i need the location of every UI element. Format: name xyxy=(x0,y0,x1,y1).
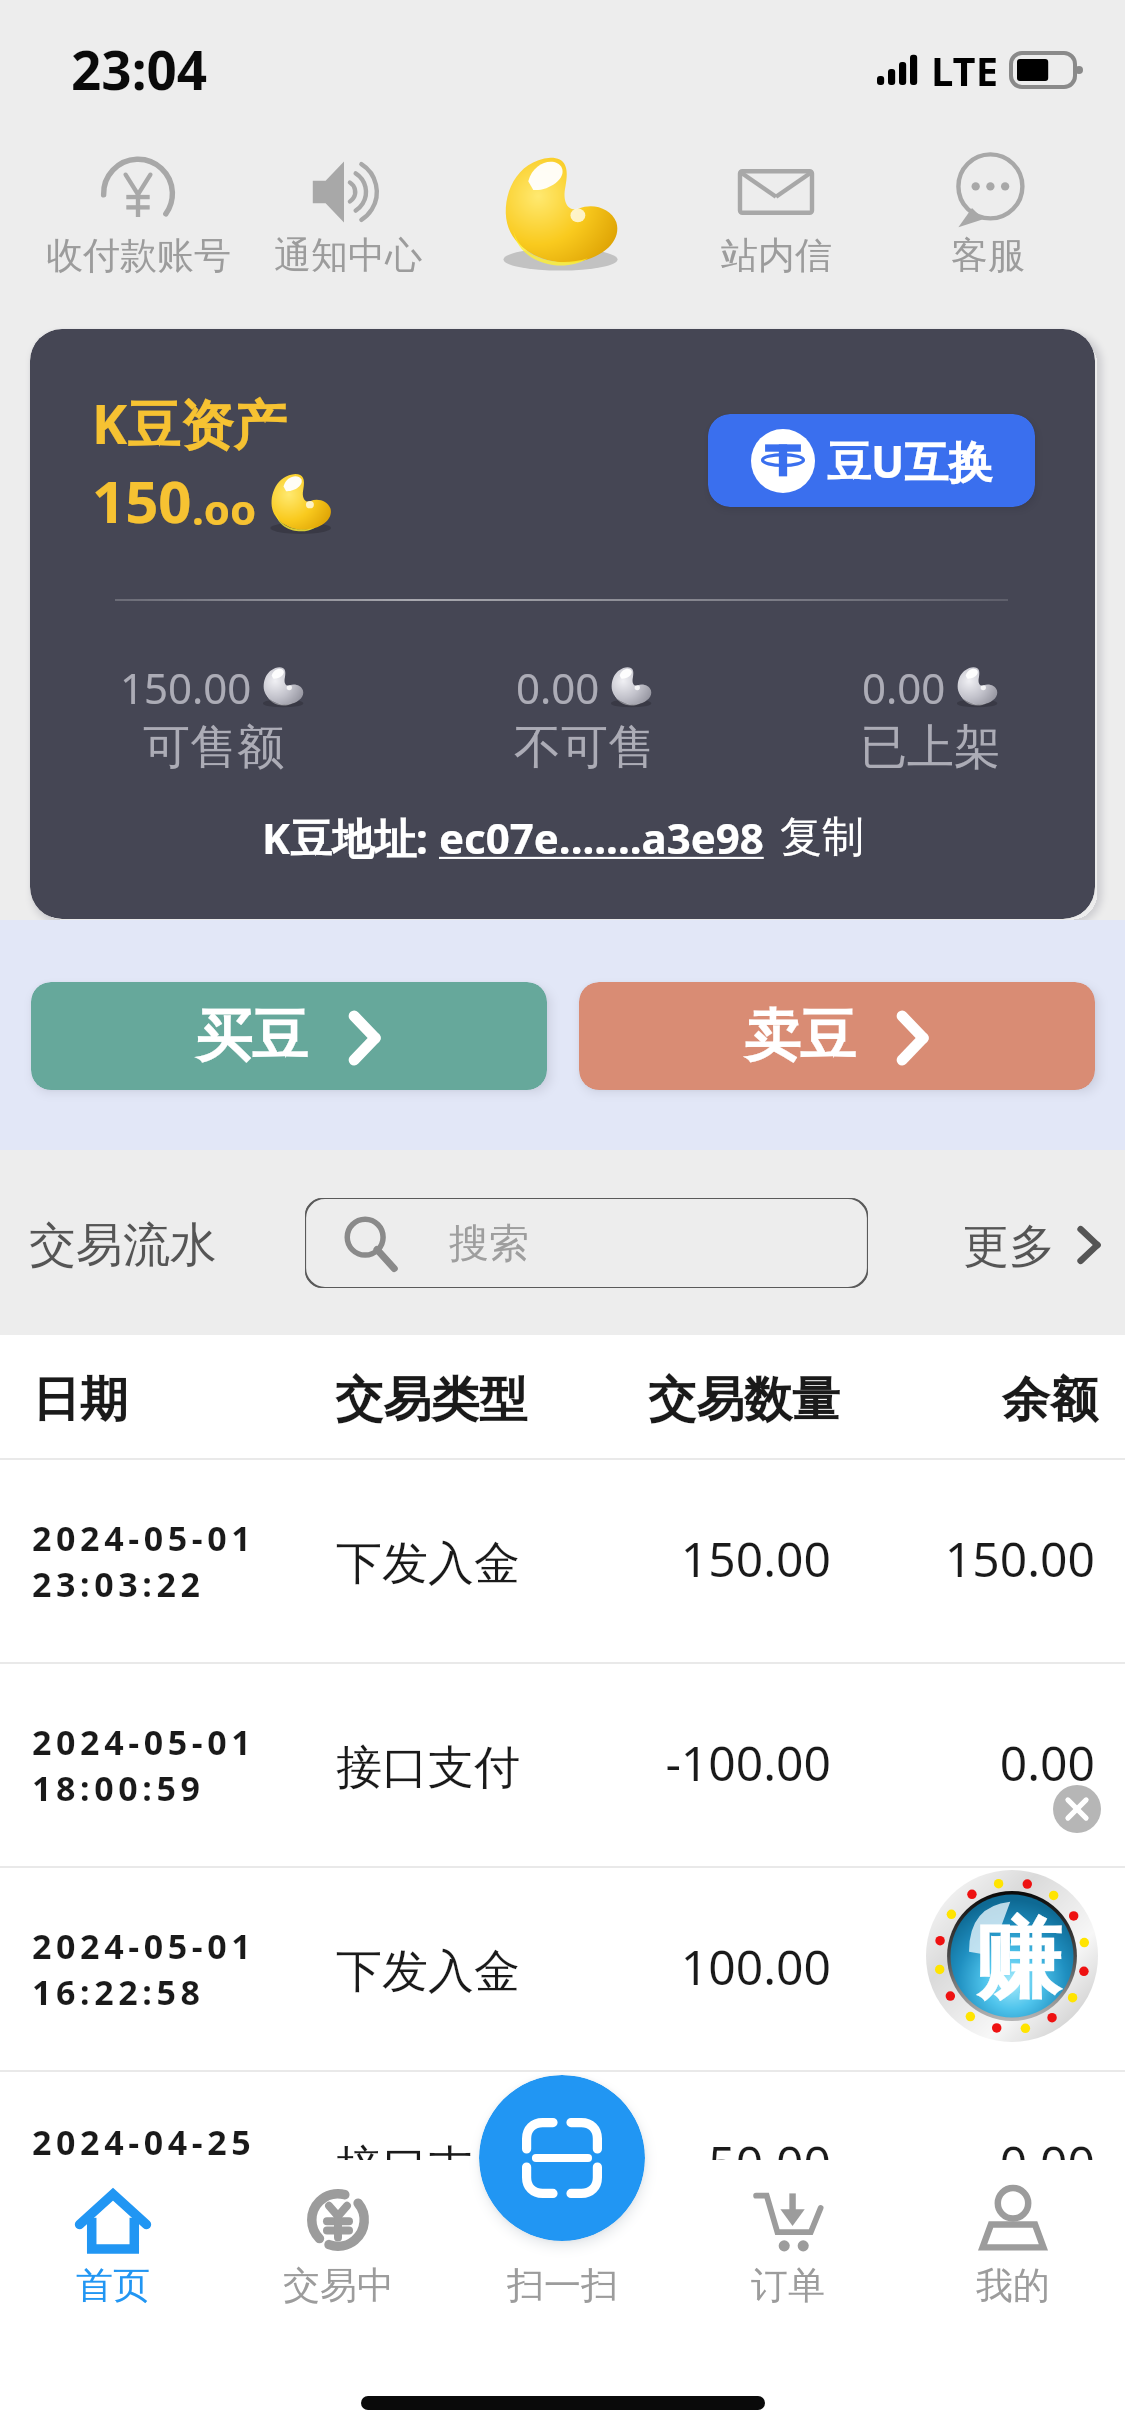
staticText: 0.00 xyxy=(795,1730,1095,1795)
button[interactable]: Close xyxy=(1053,1785,1101,1833)
button[interactable]: 扫一扫 xyxy=(452,2160,672,2350)
staticText: 搜索 xyxy=(449,1218,529,1268)
staticText: 日期 xyxy=(32,1370,128,1430)
button[interactable]: 客服 xyxy=(878,118,1098,314)
button[interactable]: 买豆 xyxy=(31,982,547,1090)
staticText: 18:00:59 xyxy=(32,1765,205,1811)
staticText: 已上架 xyxy=(860,718,1001,777)
staticText: 订单 xyxy=(751,2262,825,2309)
staticText: 0.00 xyxy=(862,659,946,716)
staticText: 下发入金 xyxy=(336,1943,520,2001)
button[interactable]: Scan xyxy=(479,2075,645,2241)
staticText: 14:10:08 xyxy=(32,2165,205,2211)
staticText: 16:22:58 xyxy=(32,1969,205,2015)
staticText: 100.00 xyxy=(531,1934,831,1999)
button[interactable]: Earn xyxy=(926,1870,1098,2042)
staticText: 收付款账号 xyxy=(46,232,231,279)
staticText: 交易流水 xyxy=(29,1216,217,1275)
staticText: 余额 xyxy=(1002,1370,1098,1430)
button[interactable]: 首页 xyxy=(3,2160,223,2350)
button[interactable]: 2024-05-01 xyxy=(0,1460,1125,1662)
staticText: 客服 xyxy=(951,232,1025,279)
staticText: 交易类型 xyxy=(335,1370,527,1430)
button[interactable]: 卖豆 xyxy=(579,982,1095,1090)
staticText: 我的 xyxy=(976,2262,1050,2309)
staticText: 赚 xyxy=(975,1906,1061,2014)
staticText: 复制 xyxy=(780,811,864,864)
staticText: 150.00 xyxy=(531,1526,831,1591)
staticText: 23:03:22 xyxy=(32,1561,205,1607)
button[interactable]: 搜索 xyxy=(305,1198,868,1288)
button[interactable]: 2024-05-01 xyxy=(0,1868,1125,2070)
staticText: 扫一扫 xyxy=(507,2262,618,2309)
staticText: 更多 xyxy=(963,1218,1055,1276)
staticText: 买豆 xyxy=(196,1001,308,1072)
button[interactable]: 交易中 xyxy=(228,2160,448,2350)
staticText: 豆U互换 xyxy=(827,431,993,491)
staticText: K豆资产 xyxy=(92,387,287,459)
staticText: 卖豆 xyxy=(744,1001,856,1072)
staticText: 站内信 xyxy=(721,232,832,279)
button[interactable]: 复制 xyxy=(780,811,864,864)
staticText: LTE xyxy=(931,43,999,97)
staticText: 接口支付 xyxy=(336,2139,520,2197)
staticText: ec07e.......a3e98 xyxy=(439,809,764,866)
button[interactable]: 更多 xyxy=(963,1218,1101,1276)
staticText: 交易中 xyxy=(283,2262,394,2309)
staticText: K豆地址: xyxy=(262,809,439,866)
staticText: 通知中心 xyxy=(274,232,422,279)
button[interactable]: K Bean xyxy=(453,118,673,314)
button[interactable]: 站内信 xyxy=(666,118,886,314)
staticText: 50.00 xyxy=(531,2130,831,2195)
staticText: 2024-05-01 xyxy=(32,1923,256,1969)
staticText: 首页 xyxy=(76,2262,150,2309)
staticText: 2024-05-01 xyxy=(32,1515,256,1561)
button[interactable]: 收付款账号 xyxy=(28,118,248,314)
button[interactable]: 订单 xyxy=(678,2160,898,2350)
button[interactable]: 通知中心 xyxy=(238,118,458,314)
staticText: 接口支付 xyxy=(336,1739,520,1797)
button[interactable]: 豆U互换 xyxy=(708,414,1035,507)
staticText: 23:04 xyxy=(71,33,208,105)
staticText: 150.00 xyxy=(795,1526,1095,1591)
staticText: 2024-05-01 xyxy=(32,1719,256,1765)
staticText: 0.00 xyxy=(516,659,600,716)
staticText: 0.00 xyxy=(795,2130,1095,2195)
staticText: 2024-04-25 xyxy=(32,2119,256,2165)
staticText: .oo xyxy=(192,480,257,537)
staticText: 150.00 xyxy=(120,659,252,716)
staticText xyxy=(795,1934,1095,1999)
staticText: 150 xyxy=(92,461,192,540)
staticText: -100.00 xyxy=(531,1730,831,1795)
staticText: 下发入金 xyxy=(336,1535,520,1593)
button[interactable]: 我的 xyxy=(903,2160,1123,2350)
button[interactable]: 2024-04-25 xyxy=(0,2072,1125,2274)
staticText: 不可售 xyxy=(514,718,655,777)
button[interactable]: 2024-05-01 xyxy=(0,1664,1125,1866)
staticText: 交易数量 xyxy=(648,1370,840,1430)
staticText: 可售额 xyxy=(143,718,284,777)
